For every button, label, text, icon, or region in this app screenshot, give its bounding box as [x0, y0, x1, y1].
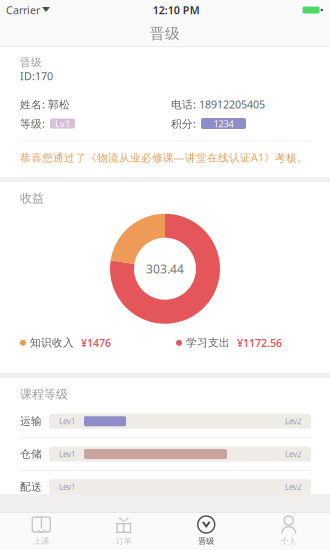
staticText: Lev2	[285, 449, 302, 459]
button[interactable]: 上课	[0, 512, 82, 550]
staticText: 恭喜您通过了《物流从业必修课—讲堂在线认证A1》考核。	[20, 150, 308, 165]
staticText: 12:10 PM	[153, 3, 200, 17]
staticText: ¥1476	[81, 336, 111, 350]
staticText: 积分:	[171, 116, 196, 131]
staticText: Carrier	[6, 3, 40, 17]
button[interactable]: 订单	[82, 512, 165, 550]
staticText: Lev2	[285, 481, 302, 492]
staticText: 晋级	[198, 536, 214, 546]
staticText: 知识收入	[30, 336, 74, 349]
staticText: Lev2	[285, 416, 302, 426]
staticText: 1234	[213, 117, 233, 130]
staticText: 收益	[20, 191, 44, 206]
staticText: 上课	[33, 536, 49, 546]
staticText: ID:170	[20, 69, 53, 83]
staticText: ¥1172.56	[237, 336, 282, 350]
staticText: 配送	[20, 480, 42, 493]
staticText: 晋级	[150, 24, 180, 42]
button[interactable]: 晋级	[165, 512, 247, 550]
staticText: 姓名: 郭松	[20, 97, 70, 111]
staticText: 个人	[281, 536, 297, 546]
staticText	[40, 5, 42, 15]
staticText: 仓储	[20, 447, 42, 461]
staticText: 303.44	[146, 261, 184, 277]
staticText: Lev1	[59, 481, 76, 492]
staticText: Lev1	[59, 416, 76, 426]
staticText: 订单	[116, 536, 132, 546]
staticText: 学习支出	[186, 336, 230, 349]
staticText: 运输	[20, 415, 42, 428]
staticText: 等级:	[20, 116, 45, 131]
button[interactable]: 个人	[247, 512, 330, 550]
staticText: Lv1	[55, 117, 70, 130]
staticText: Lev1	[59, 449, 76, 459]
staticText: 晋级	[20, 56, 42, 69]
staticText: 课程等级	[20, 387, 68, 402]
staticText: 电话: 18912205405	[171, 97, 265, 111]
